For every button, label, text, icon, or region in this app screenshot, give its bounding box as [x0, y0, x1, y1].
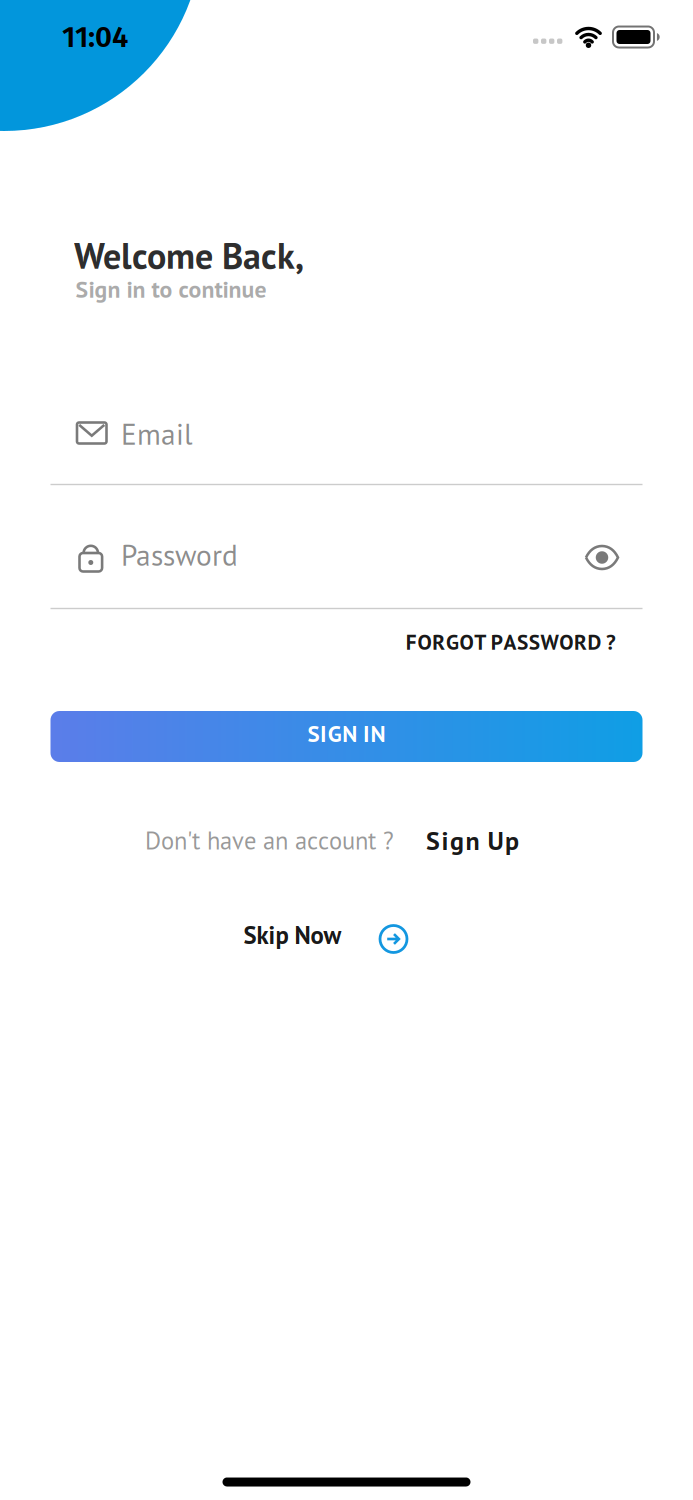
staticText: F [406, 628, 417, 656]
staticText: O [417, 628, 431, 656]
staticText: g [450, 823, 464, 857]
staticText: I [320, 719, 327, 748]
staticText: O [460, 628, 474, 656]
staticText: S [426, 823, 440, 857]
staticText: N [342, 719, 357, 748]
staticText: N [371, 719, 386, 748]
staticText: U [487, 823, 503, 857]
staticText: i [441, 823, 448, 857]
staticText: G [446, 628, 459, 656]
staticText: A [503, 628, 516, 656]
staticText: n [465, 823, 479, 857]
staticText: Welcome Back, [74, 232, 304, 279]
staticText: P [491, 628, 503, 656]
staticText: ? [606, 628, 616, 656]
staticText: S [529, 628, 540, 656]
staticText: T [474, 628, 486, 656]
staticText: O [559, 628, 573, 656]
staticText: R [574, 628, 587, 656]
staticText: Sign in to continue [75, 273, 266, 304]
staticText: I [363, 719, 370, 748]
staticText: Password [121, 536, 238, 574]
staticText: 11:04 [62, 19, 128, 55]
staticText: D [588, 628, 602, 656]
staticText: G [328, 719, 342, 748]
staticText: p [505, 823, 519, 857]
staticText: R [432, 628, 445, 656]
staticText: S [517, 628, 528, 656]
staticText: S [307, 719, 319, 748]
staticText: W [540, 628, 558, 656]
staticText: Skip Now [243, 919, 341, 951]
staticText: Email [121, 415, 193, 453]
staticText: Don't have an account ? [145, 824, 394, 856]
